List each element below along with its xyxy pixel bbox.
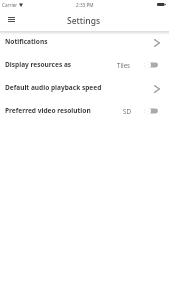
button[interactable]: Preferred video resolution	[0, 99, 169, 122]
staticText: Notifications	[5, 37, 48, 46]
button[interactable]: Toggle	[144, 61, 158, 69]
staticText: 2:33 PM	[76, 2, 94, 8]
button[interactable]: Default audio playback speed	[0, 76, 169, 99]
button[interactable]: Display resources as	[0, 53, 169, 76]
staticText: Carrier	[2, 2, 18, 8]
staticText: Display resources as	[5, 60, 72, 69]
staticText: Settings	[67, 15, 101, 27]
button[interactable]: Toggle	[144, 107, 158, 115]
staticText: Preferred video resolution	[5, 106, 91, 115]
staticText: Tiles	[117, 61, 131, 69]
button[interactable]: Menu	[3, 12, 20, 27]
staticText: Default audio playback speed	[5, 83, 102, 92]
button[interactable]: Notifications	[0, 30, 169, 53]
staticText: SD	[123, 107, 131, 115]
